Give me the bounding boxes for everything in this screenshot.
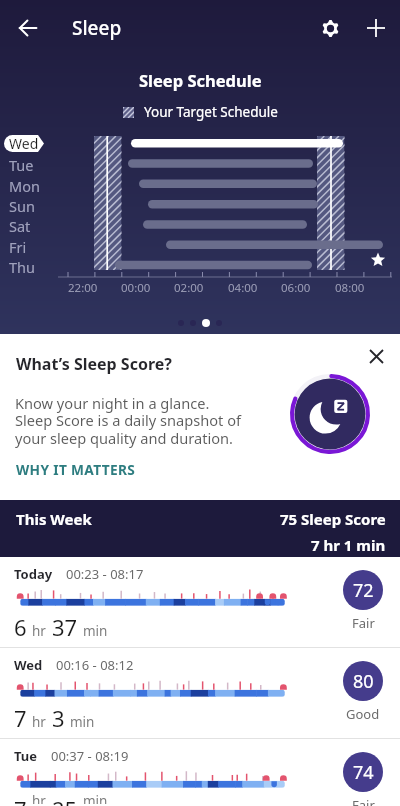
- staticText: 74: [353, 760, 374, 785]
- staticText: Wed: [9, 134, 39, 153]
- button[interactable]: Tue: [0, 739, 400, 806]
- staticText: Sun: [9, 196, 35, 216]
- button[interactable]: Today: [0, 557, 400, 647]
- staticText: 00:23 - 08:17: [66, 565, 144, 583]
- staticText: min: [70, 713, 95, 731]
- staticText: Sleep: [72, 15, 122, 41]
- staticText: 04:00: [228, 280, 258, 296]
- staticText: 22:00: [68, 280, 98, 296]
- staticText: 6: [14, 612, 27, 642]
- staticText: Tue: [14, 747, 38, 765]
- staticText: Thu: [9, 257, 35, 277]
- staticText: 7 hr 1 min: [311, 535, 386, 555]
- staticText: Today: [14, 565, 53, 583]
- button[interactable]: Settings: [306, 4, 354, 52]
- staticText: 7: [14, 794, 27, 806]
- staticText: Know your night in a glance. Sleep Score…: [15, 393, 241, 448]
- staticText: 00:16 - 08:12: [56, 656, 134, 674]
- staticText: min: [83, 792, 108, 804]
- staticText: 7: [14, 703, 27, 733]
- staticText: hr: [32, 713, 46, 731]
- staticText: WHY IT MATTERS: [16, 460, 136, 479]
- staticText: This Week: [16, 509, 92, 529]
- staticText: Wed: [14, 656, 43, 674]
- staticText: 25: [52, 794, 78, 806]
- staticText: Tue: [9, 155, 34, 175]
- staticText: 80: [353, 669, 374, 694]
- staticText: 00:37 - 08:19: [51, 747, 129, 765]
- staticText: hr: [32, 792, 46, 804]
- staticText: Fri: [9, 237, 27, 257]
- staticText: min: [83, 622, 108, 640]
- staticText: 06:00: [281, 280, 311, 296]
- staticText: hr: [32, 622, 46, 640]
- staticText: 72: [353, 578, 374, 603]
- button[interactable]: WHY IT MATTERS: [16, 460, 136, 479]
- button[interactable]: Close: [356, 336, 396, 376]
- staticText: 00:00: [121, 280, 151, 296]
- staticText: Fair: [352, 796, 375, 806]
- staticText: 08:00: [335, 280, 365, 296]
- staticText: 02:00: [174, 280, 204, 296]
- staticText: Sleep Schedule: [139, 69, 262, 91]
- staticText: Fair: [352, 614, 375, 632]
- staticText: Good: [346, 705, 380, 723]
- button[interactable]: Add: [352, 4, 400, 52]
- staticText: Sat: [9, 216, 31, 236]
- staticText: 75 Sleep Score: [280, 509, 386, 529]
- staticText: What’s Sleep Score?: [16, 353, 172, 375]
- staticText: Mon: [9, 176, 40, 196]
- button[interactable]: Wed: [0, 648, 400, 738]
- staticText: 37: [52, 612, 78, 642]
- staticText: Your Target Schedule: [144, 103, 278, 121]
- button[interactable]: Back: [0, 0, 56, 56]
- staticText: 3: [52, 703, 65, 733]
